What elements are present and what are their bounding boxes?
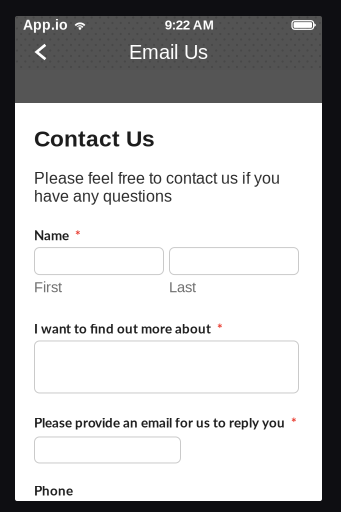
staticText: Phone: [34, 482, 73, 498]
staticText: Contact Us: [34, 126, 155, 151]
staticText: Please provide an email for us to reply …: [34, 414, 285, 430]
staticText: First: [34, 279, 62, 295]
staticText: I want to find out more about: [34, 320, 211, 336]
staticText: Please feel free to contact us if you ha…: [34, 169, 280, 205]
staticText: Email Us: [129, 41, 208, 63]
staticText: Name: [34, 227, 69, 243]
staticText: 9:22 AM: [165, 18, 214, 32]
staticText: Last: [169, 279, 196, 295]
staticText: *: [75, 227, 81, 243]
button[interactable]: Back: [24, 34, 58, 70]
staticText: *: [291, 414, 297, 430]
staticText: App.io: [23, 17, 68, 33]
staticText: *: [217, 320, 223, 336]
